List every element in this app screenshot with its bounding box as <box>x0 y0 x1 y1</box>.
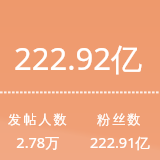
button[interactable]: 粉丝数 <box>81 111 159 152</box>
staticText: 222.91亿 <box>90 132 150 152</box>
staticText: 222.92亿 <box>14 37 142 79</box>
staticText: 2.78万 <box>16 132 60 152</box>
staticText: 粉丝数 <box>97 111 143 127</box>
button[interactable]: 发帖人数 <box>0 111 77 152</box>
staticText: 发帖人数 <box>8 111 69 127</box>
